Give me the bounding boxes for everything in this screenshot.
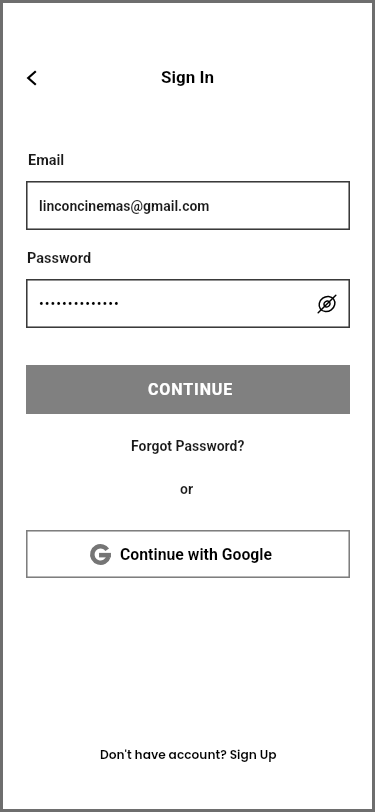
button[interactable]: Don't have account? Sign Up bbox=[100, 746, 277, 763]
staticText: Continue with Google bbox=[120, 545, 273, 564]
staticText: •••••••••••••• bbox=[39, 296, 120, 311]
button[interactable]: Forgot Password? bbox=[131, 438, 245, 454]
staticText: linconcinemas@gmail.com bbox=[39, 198, 210, 214]
staticText: Email bbox=[28, 152, 65, 169]
button[interactable]: •••••••••••••• bbox=[26, 279, 350, 328]
button[interactable]: Continue with Google bbox=[26, 530, 350, 578]
staticText: Password bbox=[27, 250, 92, 267]
staticText: or bbox=[180, 481, 194, 497]
button[interactable]: Show password bbox=[313, 290, 341, 318]
button[interactable]: Back bbox=[12, 58, 52, 98]
staticText: CONTINUE bbox=[148, 380, 234, 399]
staticText: Sign In bbox=[161, 67, 214, 87]
button[interactable]: linconcinemas@gmail.com bbox=[26, 181, 350, 230]
button[interactable]: CONTINUE bbox=[26, 365, 350, 414]
